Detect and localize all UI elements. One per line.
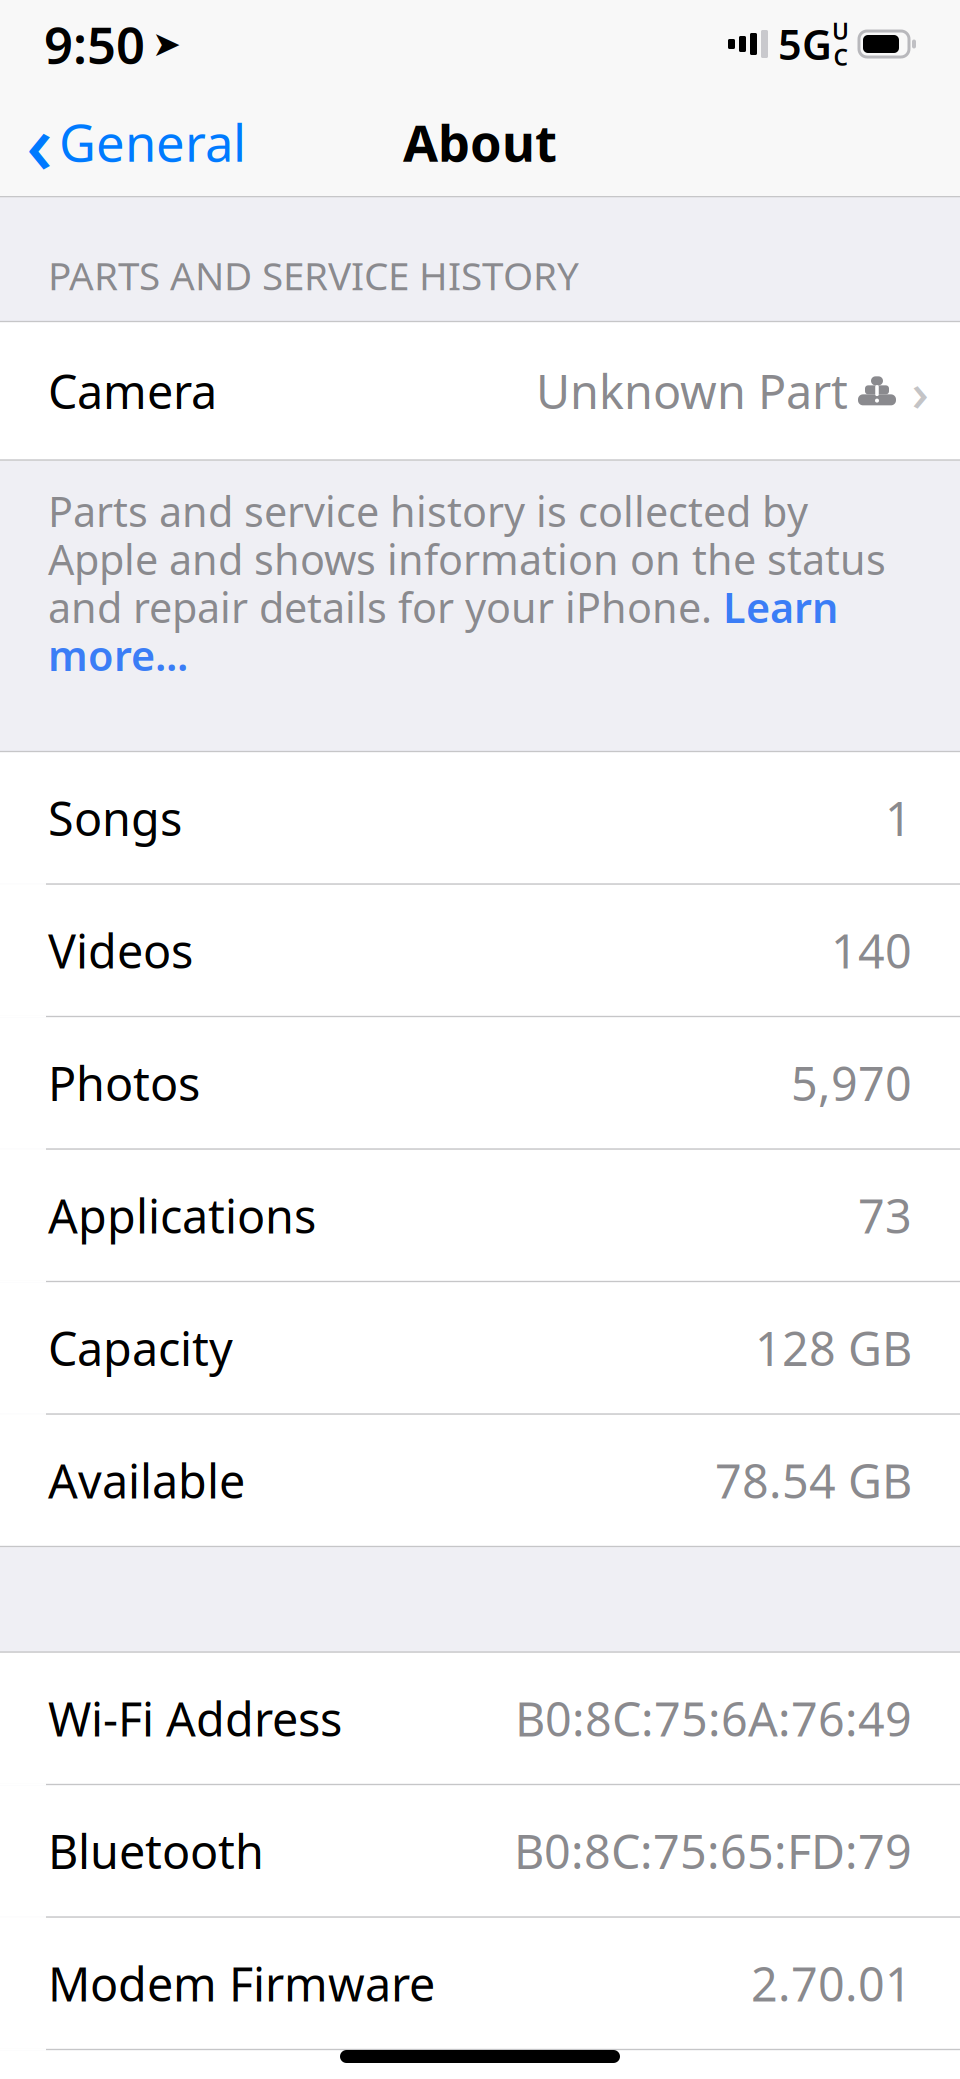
button[interactable]: Learn [723, 579, 838, 634]
staticText: 2.70.01 [751, 1952, 912, 2014]
staticText: 5G [778, 17, 832, 71]
staticText: 73 [858, 1184, 912, 1246]
staticText: Songs [48, 787, 182, 849]
staticText: PARTS AND SERVICE HISTORY [48, 249, 579, 301]
staticText: Capacity [48, 1317, 233, 1379]
staticText: Parts and service history is collected b… [48, 483, 808, 538]
staticText: Camera [48, 360, 217, 422]
staticText: Unknown Part [536, 360, 848, 422]
staticText: Learn [723, 579, 838, 634]
staticText: Available [48, 1449, 245, 1511]
button[interactable]: ‹ [0, 102, 260, 182]
staticText: U [832, 16, 849, 46]
staticText: › [911, 355, 928, 426]
staticText: Applications [48, 1184, 316, 1246]
staticText: Videos [48, 919, 193, 981]
staticText: Wi-Fi Address [48, 1687, 342, 1749]
staticText: more... [48, 627, 188, 682]
button[interactable]: Camera [0, 322, 960, 459]
staticText: Photos [48, 1052, 200, 1114]
staticText: C [833, 42, 847, 72]
staticText: General [59, 108, 246, 176]
staticText: ‹ [26, 87, 53, 197]
button[interactable]: more... [48, 631, 188, 679]
staticText: Bluetooth [48, 1820, 264, 1882]
staticText: About [403, 108, 557, 176]
staticText: B0:8C:75:6A:76:49 [515, 1687, 912, 1749]
staticText: 78.54 GB [715, 1449, 912, 1511]
staticText: Apple and shows information on the statu… [48, 531, 886, 586]
staticText: Modem Firmware [48, 1952, 435, 2014]
staticText: 9:50 [44, 10, 145, 78]
staticText: 140 [831, 919, 912, 981]
staticText: 128 GB [755, 1317, 912, 1379]
staticText: B0:8C:75:65:FD:79 [514, 1820, 912, 1882]
staticText: ➤ [152, 24, 181, 64]
staticText: and repair details for your iPhone. [48, 579, 723, 634]
staticText: 1 [885, 787, 912, 849]
staticText: 5,970 [791, 1052, 912, 1114]
